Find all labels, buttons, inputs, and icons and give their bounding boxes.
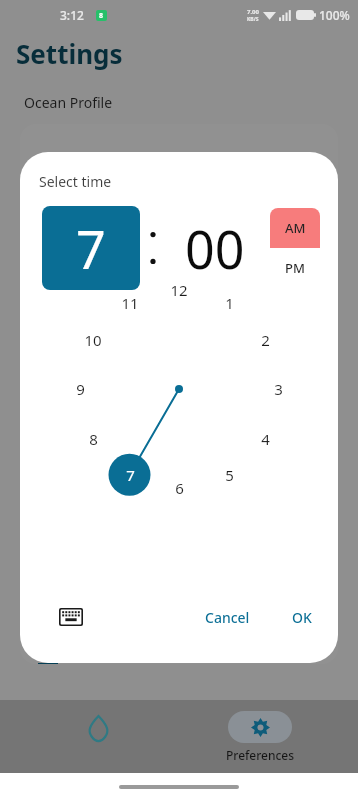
staticText: Select time — [39, 172, 112, 191]
staticText: 6 — [175, 478, 184, 498]
button[interactable]: 10 — [77, 328, 109, 352]
staticText: 4 — [261, 429, 270, 449]
button[interactable]: 7 — [42, 206, 140, 290]
staticText: 8 — [99, 11, 104, 21]
staticText: Preferences — [226, 747, 295, 763]
button[interactable]: 5 — [213, 463, 245, 487]
button[interactable]: 1 — [213, 291, 245, 315]
staticText: 7 — [76, 213, 106, 284]
button[interactable]: 8 — [77, 427, 109, 451]
button[interactable]: Switch to text input mode — [54, 600, 88, 634]
button[interactable]: 9 — [64, 377, 96, 401]
staticText: 00 — [185, 213, 245, 284]
button[interactable]: 3 — [262, 377, 294, 401]
staticText: 1 — [225, 293, 234, 313]
staticText: OK — [292, 608, 312, 627]
staticText: 11 — [121, 293, 139, 313]
staticText: 5 — [225, 465, 234, 485]
button[interactable]: 7 — [114, 463, 146, 487]
staticText: Ocean Profile — [24, 93, 113, 112]
staticText: Cancel — [205, 608, 250, 627]
staticText: 8 — [89, 429, 98, 449]
staticText: 9 — [76, 379, 85, 399]
button[interactable]: Cancel — [193, 600, 262, 635]
button[interactable]: 11 — [114, 291, 146, 315]
staticText: KB/S — [247, 16, 259, 23]
button[interactable]: 12 — [163, 278, 195, 302]
staticText: 7 — [126, 465, 135, 485]
button[interactable]: Preferences — [195, 711, 325, 763]
staticText: Settings — [16, 36, 123, 71]
staticText: PM — [285, 259, 305, 277]
button[interactable]: OK — [280, 600, 324, 635]
button[interactable]: PM — [270, 248, 320, 288]
staticText: AM — [285, 219, 306, 237]
button[interactable]: AM — [270, 208, 320, 248]
button[interactable]: 00 — [166, 206, 264, 290]
staticText: 7.00 — [247, 8, 259, 16]
button[interactable]: Hydration — [33, 712, 163, 761]
button[interactable]: 2 — [249, 328, 281, 352]
staticText: 100% — [319, 7, 350, 23]
button[interactable]: 6 — [163, 476, 195, 500]
staticText: 10 — [84, 330, 102, 350]
button[interactable]: 4 — [249, 427, 281, 451]
staticText: 3 — [274, 379, 283, 399]
staticText: 12 — [170, 280, 188, 300]
staticText: 3:12 — [60, 7, 84, 23]
staticText: 2 — [261, 330, 270, 350]
